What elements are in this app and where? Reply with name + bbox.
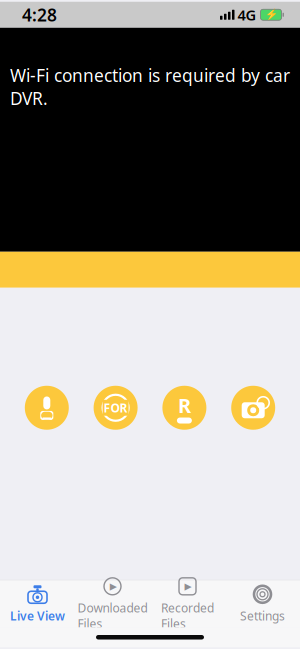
staticText: Recorded Files [161, 600, 214, 632]
button[interactable]: Snapshot [231, 386, 275, 430]
staticText: Downloaded Files [77, 600, 147, 632]
button[interactable]: ▶ [75, 580, 150, 627]
button[interactable]: ▶ [150, 580, 225, 627]
staticText: Settings [240, 608, 285, 624]
button[interactable]: Microphone [25, 386, 69, 430]
staticText: ▶ [184, 581, 191, 592]
staticText: 4G [237, 5, 256, 24]
staticText: Wi-Fi connection is required by car DVR. [10, 64, 290, 110]
staticText: FOR [104, 400, 128, 416]
staticText: ▶ [110, 581, 117, 592]
staticText: 4:28 [22, 3, 57, 26]
staticText: R [178, 392, 191, 419]
button[interactable]: Resolution [162, 386, 206, 430]
button[interactable]: Settings [225, 580, 300, 627]
staticText: ⚡ [264, 9, 277, 21]
button[interactable]: Format [94, 386, 138, 430]
button[interactable]: Live View [0, 580, 75, 627]
staticText: Live View [10, 608, 65, 624]
